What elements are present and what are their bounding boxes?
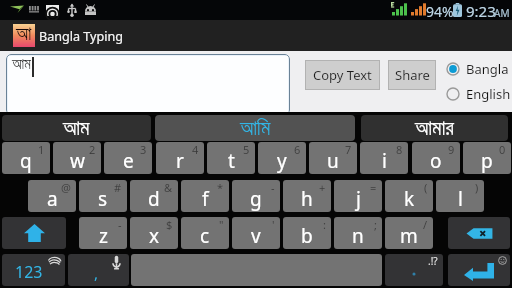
button[interactable]: i xyxy=(360,142,408,174)
staticText: Bangla Typing xyxy=(39,28,124,45)
staticText: 94% xyxy=(426,2,454,21)
staticText: আমি xyxy=(240,118,271,139)
staticText: .!? xyxy=(428,254,438,268)
staticText: n xyxy=(352,223,364,249)
staticText: q xyxy=(20,148,32,174)
staticText: 5 xyxy=(243,142,250,157)
button[interactable]: y xyxy=(258,142,306,174)
staticText: @ xyxy=(61,180,71,195)
staticText: - xyxy=(118,217,122,232)
staticText: 4 xyxy=(192,142,199,157)
button[interactable]: a xyxy=(28,180,76,212)
button[interactable]: r xyxy=(156,142,204,174)
button[interactable]: s xyxy=(79,180,127,212)
button[interactable]: u xyxy=(309,142,357,174)
button[interactable]: Share xyxy=(388,60,436,90)
staticText: m xyxy=(400,223,418,249)
button[interactable]: f xyxy=(181,180,229,212)
button[interactable]: Period and punctuation xyxy=(385,254,443,286)
button[interactable]: z xyxy=(79,217,127,249)
staticText: y xyxy=(277,148,287,174)
staticText: আম xyxy=(63,118,90,139)
staticText: English xyxy=(466,85,511,103)
button[interactable]: j xyxy=(334,180,382,212)
staticText: f xyxy=(202,186,209,212)
staticText: ; xyxy=(374,217,377,232)
button[interactable]: l xyxy=(436,180,484,212)
button[interactable]: t xyxy=(207,142,255,174)
staticText: b xyxy=(301,223,313,249)
staticText: r xyxy=(176,148,184,174)
button[interactable]: আম xyxy=(2,115,151,141)
button[interactable]: Copy Text xyxy=(305,60,380,90)
staticText: 9 xyxy=(448,142,455,157)
staticText: আমার xyxy=(415,118,454,139)
staticText: 123 xyxy=(15,261,43,283)
button[interactable]: Symbols 123 xyxy=(2,254,65,286)
staticText: z xyxy=(99,223,108,249)
staticText: l xyxy=(458,186,463,212)
staticText: 1 xyxy=(38,142,45,157)
staticText: - xyxy=(271,180,275,195)
staticText: 2 xyxy=(89,142,96,157)
button[interactable]: আমি xyxy=(155,115,355,141)
staticText: : xyxy=(323,217,326,232)
button[interactable]: Comma and voice input xyxy=(68,254,129,286)
button[interactable]: m xyxy=(385,217,433,249)
button[interactable]: n xyxy=(334,217,382,249)
button[interactable]: v xyxy=(232,217,280,249)
button[interactable]: Enter xyxy=(448,254,510,286)
staticText: i xyxy=(382,148,387,174)
staticText: , xyxy=(94,263,99,283)
staticText: ( xyxy=(424,180,428,195)
staticText: h xyxy=(301,186,313,212)
staticText: k xyxy=(404,186,415,212)
button[interactable]: d xyxy=(130,180,178,212)
staticText: 0 xyxy=(499,142,506,157)
staticText: AM xyxy=(494,6,510,20)
staticText: " xyxy=(219,217,224,232)
staticText: # xyxy=(114,180,122,195)
staticText: & xyxy=(164,180,173,195)
button[interactable]: b xyxy=(283,217,331,249)
button[interactable]: h xyxy=(283,180,331,212)
button[interactable]: k xyxy=(385,180,433,212)
staticText: ) xyxy=(475,180,479,195)
staticText: d xyxy=(148,186,160,212)
button[interactable]: x xyxy=(130,217,178,249)
staticText: / xyxy=(423,217,428,232)
staticText: 8 xyxy=(396,142,403,157)
staticText: $ xyxy=(166,217,173,232)
staticText: আ xyxy=(16,25,32,44)
staticText: g xyxy=(250,186,262,212)
button[interactable]: Bangla xyxy=(446,58,509,80)
button[interactable]: p xyxy=(463,142,511,174)
button[interactable]: c xyxy=(181,217,229,249)
button[interactable]: w xyxy=(53,142,101,174)
staticText: আম xyxy=(12,57,31,72)
button[interactable]: key xyxy=(2,217,66,249)
button[interactable]: g xyxy=(232,180,280,212)
staticText: w xyxy=(70,148,85,174)
staticText: * xyxy=(217,180,224,195)
button[interactable]: Backspace xyxy=(448,217,510,249)
button[interactable]: English xyxy=(446,83,511,105)
button[interactable]: o xyxy=(412,142,460,174)
staticText: 6 xyxy=(294,142,301,157)
staticText: u xyxy=(327,148,339,174)
button[interactable]: আম xyxy=(8,56,288,113)
button[interactable]: আমার xyxy=(361,115,508,141)
staticText: ' xyxy=(272,217,275,232)
button[interactable]: q xyxy=(2,142,50,174)
staticText: + xyxy=(319,180,326,195)
staticText: v xyxy=(251,223,261,249)
staticText: = xyxy=(370,180,377,195)
staticText: j xyxy=(356,186,361,212)
button[interactable]: e xyxy=(104,142,152,174)
staticText: Share xyxy=(395,66,430,84)
staticText: a xyxy=(47,186,58,212)
staticText: Copy Text xyxy=(313,66,372,84)
staticText: 9:23 xyxy=(466,1,496,21)
staticText: 7 xyxy=(345,142,352,157)
